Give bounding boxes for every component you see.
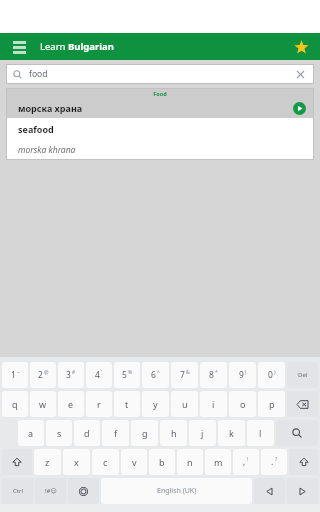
staticText: e [68,398,74,410]
button[interactable]: t [114,391,140,417]
button[interactable]: 5 [114,362,140,388]
staticText: 1 [11,369,16,381]
staticText: o [240,398,246,410]
staticText: c [103,456,108,468]
button[interactable]: q [2,391,28,417]
staticText: ) [274,369,276,376]
button[interactable]: x [63,449,90,475]
button[interactable]: Move cursor left [254,478,285,504]
button[interactable]: j [189,420,216,446]
staticText: g [142,427,148,439]
staticText: , [243,456,246,468]
button[interactable]: 6 [142,362,169,388]
button[interactable]: Ctrl [2,478,33,504]
staticText: i [212,398,215,410]
button[interactable]: 7 [171,362,198,388]
staticText: x [74,456,79,468]
staticText: r [97,398,101,410]
button[interactable]: h [160,420,187,446]
button[interactable]: w [30,391,56,417]
button[interactable]: i [200,391,227,417]
staticText: h [171,427,177,439]
button[interactable]: o [229,391,256,417]
staticText: 3 [66,369,71,381]
button[interactable]: s [46,420,72,446]
button[interactable]: Open navigation menu [8,36,30,58]
button[interactable]: Play pronunciation [291,100,307,116]
button[interactable]: p [258,391,285,417]
staticText: t [125,398,129,410]
staticText: z [45,456,50,468]
staticText: 9 [239,369,244,381]
button[interactable]: 2 [30,362,56,388]
button[interactable]: Del [287,362,318,388]
staticText: m [214,456,223,468]
staticText: # [72,369,76,376]
button[interactable]: n [177,449,203,475]
button[interactable]: 4 [86,362,112,388]
staticText: Ctrl [13,487,23,495]
staticText: . [271,456,274,468]
staticText: 7 [180,369,185,381]
staticText: k [229,427,234,439]
button[interactable]: Food [6,88,314,160]
staticText: ? [275,456,278,463]
staticText: морска храна [18,102,83,114]
button[interactable]: 1 [2,362,28,388]
button[interactable]: !#☺ [35,478,66,504]
button[interactable]: . [261,449,287,475]
button[interactable]: f [102,420,129,446]
staticText: Del [298,371,308,379]
button[interactable]: v [121,449,147,475]
button[interactable]: 8 [200,362,227,388]
staticText: % [128,369,133,376]
staticText: ' [101,369,103,376]
staticText: Bulgarian [68,40,114,53]
button[interactable]: z [34,449,61,475]
staticText: y [153,398,158,410]
staticText: p [269,398,275,410]
button[interactable]: 9 [229,362,256,388]
button[interactable]: Backspace [287,391,318,417]
button[interactable]: Move cursor right [287,478,318,504]
staticText: !#☺ [45,487,57,495]
staticText: 0 [268,369,273,381]
staticText: Food [153,90,167,97]
button[interactable]: a [18,420,44,446]
staticText: * [215,369,218,376]
button[interactable]: Shift [289,449,318,475]
button[interactable]: y [142,391,169,417]
staticText: s [57,427,62,439]
button[interactable]: English (UK) [101,478,252,504]
button[interactable]: g [131,420,158,446]
staticText: Learn [40,40,68,53]
button[interactable]: Favourites [290,36,312,58]
staticText: j [201,427,204,439]
staticText: 6 [151,369,156,381]
button[interactable]: Shift [2,449,32,475]
button[interactable]: e [58,391,84,417]
button[interactable]: c [92,449,119,475]
button[interactable]: m [205,449,231,475]
staticText: English (UK) [157,486,197,496]
staticText: v [132,456,137,468]
button[interactable]: Keyboard settings [68,478,99,504]
button[interactable]: r [86,391,112,417]
button[interactable]: d [74,420,100,446]
staticText: f [114,427,118,439]
button[interactable]: 0 [258,362,285,388]
button[interactable]: Clear search [293,67,307,81]
button[interactable]: , [233,449,259,475]
staticText: 2 [38,369,43,381]
button[interactable]: k [218,420,245,446]
button[interactable]: Search [276,420,318,446]
button[interactable]: food [6,64,314,84]
button[interactable]: b [149,449,175,475]
button[interactable]: u [171,391,198,417]
staticText: u [182,398,188,410]
staticText: 5 [122,369,127,381]
staticText: & [186,369,190,376]
staticText: 4 [95,369,100,381]
button[interactable]: 3 [58,362,84,388]
button[interactable]: l [247,420,274,446]
